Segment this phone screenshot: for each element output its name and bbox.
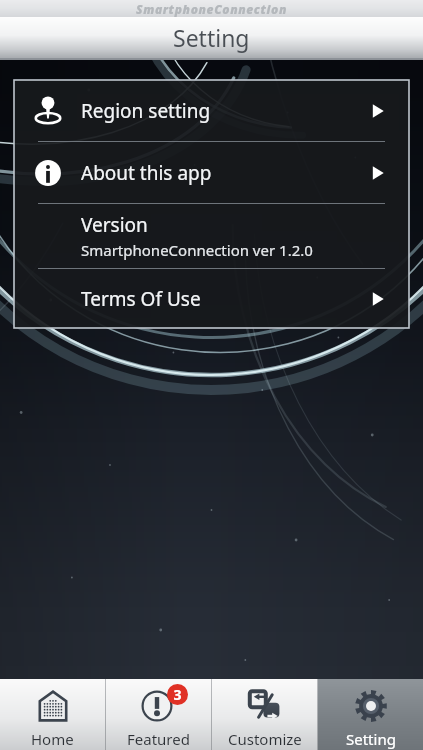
- staticText: Terms Of Use: [81, 286, 365, 312]
- staticText: Region setting: [81, 98, 365, 124]
- button[interactable]: Customize: [212, 679, 317, 750]
- staticText: 3: [173, 685, 182, 704]
- button[interactable]: About this app: [14, 142, 409, 203]
- staticText: Setting: [173, 22, 250, 53]
- staticText: SmartphoneConnection ver 1.2.0: [81, 240, 313, 260]
- staticText: Customize: [228, 729, 302, 749]
- button[interactable]: Version: [14, 204, 409, 268]
- button[interactable]: Featured: [106, 679, 211, 750]
- button[interactable]: Region setting: [14, 80, 409, 141]
- staticText: Version: [81, 212, 148, 238]
- staticText: About this app: [81, 160, 365, 186]
- button[interactable]: Setting: [318, 679, 423, 750]
- button[interactable]: Home: [0, 679, 105, 750]
- staticText: Featured: [127, 729, 190, 749]
- button[interactable]: Terms Of Use: [14, 269, 409, 328]
- staticText: Setting: [346, 729, 396, 749]
- staticText: Home: [31, 729, 74, 749]
- staticText: SmartphoneConnection: [136, 1, 288, 17]
